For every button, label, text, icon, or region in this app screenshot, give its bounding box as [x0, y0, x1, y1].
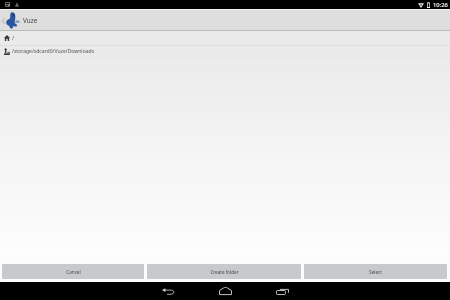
- button[interactable]: Cancel: [2, 264, 144, 279]
- staticText: 10:26: [433, 1, 448, 9]
- staticText: Select: [369, 269, 382, 275]
- button[interactable]: Select: [304, 264, 447, 279]
- other: Navigate up: [2, 18, 5, 24]
- staticText: Cancel: [66, 269, 81, 275]
- staticText: /storage/sdcard0/Vuze/Downloads: [12, 48, 95, 55]
- button[interactable]: Navigate up: [0, 10, 450, 31]
- button[interactable]: Recents: [276, 282, 289, 300]
- staticText: /: [12, 34, 15, 42]
- staticText: Vuze: [23, 16, 38, 25]
- button[interactable]: /storage/sdcard0/Vuze/Downloads: [0, 46, 450, 57]
- button[interactable]: Create folder: [147, 264, 301, 279]
- button[interactable]: Back: [162, 282, 175, 300]
- button[interactable]: /: [0, 31, 450, 45]
- staticText: Create folder: [210, 269, 239, 275]
- button[interactable]: Home: [219, 282, 232, 300]
